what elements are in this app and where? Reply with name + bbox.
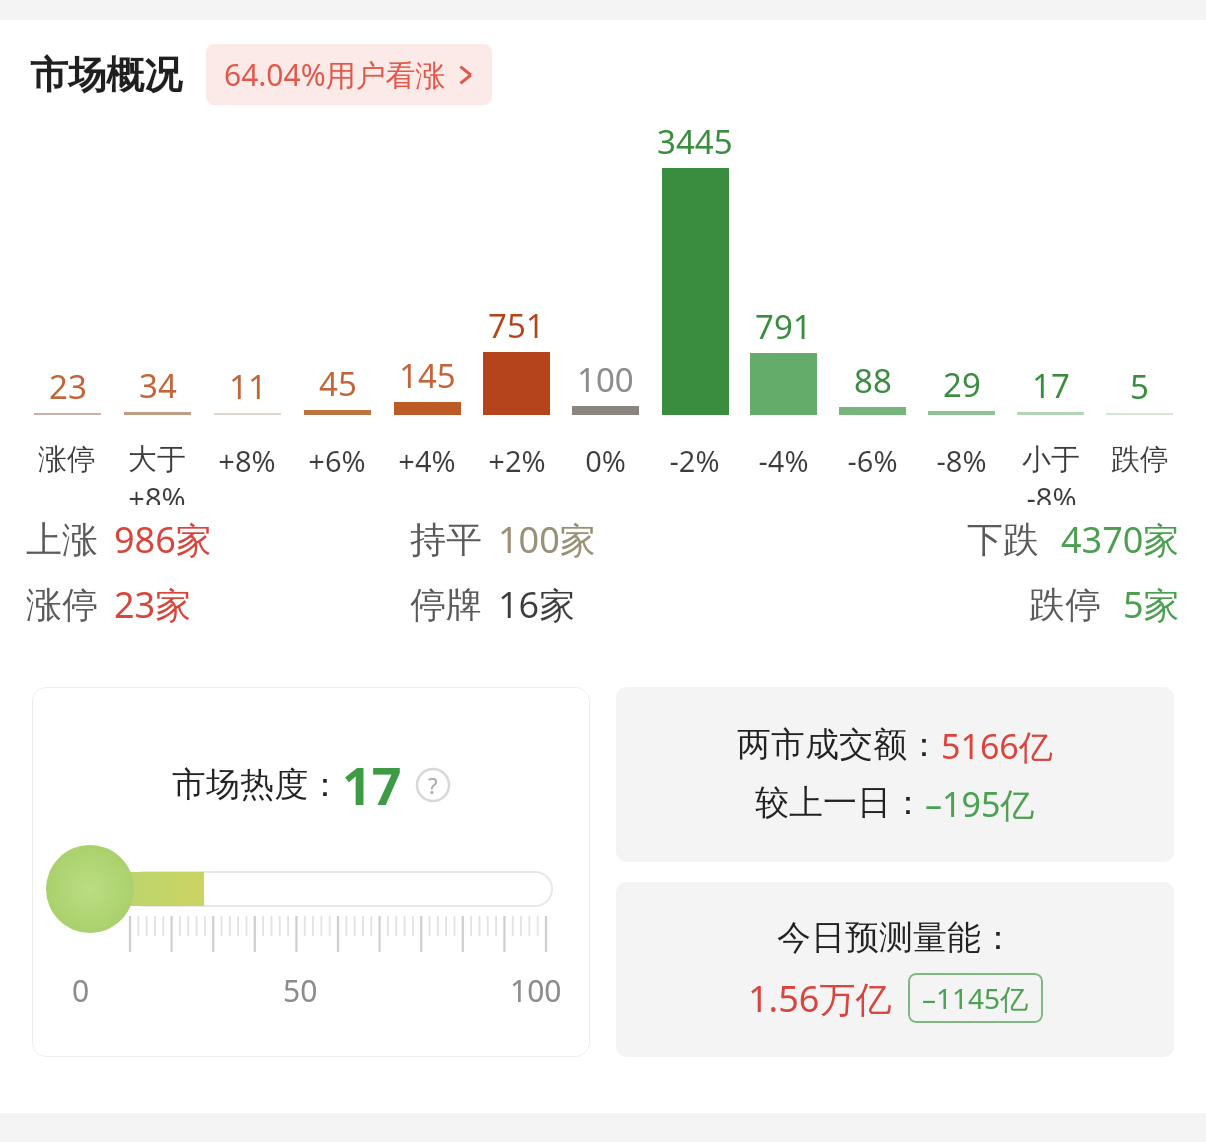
staticText: +6% (308, 441, 366, 480)
staticText: 今日预测量能： (777, 916, 1015, 959)
staticText: 涨停 (38, 441, 96, 478)
staticText: 34 (139, 363, 177, 408)
staticText: 17 (342, 749, 402, 820)
staticText: +8% (218, 441, 276, 480)
staticText: 100 (510, 970, 562, 1011)
staticText: 下跌 (967, 517, 1039, 562)
staticText: 4370家 (1061, 515, 1180, 564)
staticText: 29 (943, 362, 981, 407)
staticText: -2% (669, 441, 720, 480)
staticText: 145 (399, 353, 456, 398)
staticText: 50 (283, 970, 318, 1011)
staticText: 0 (72, 970, 90, 1011)
staticText: 23 (49, 364, 87, 409)
button[interactable]: 两市成交额： (616, 687, 1174, 862)
staticText: –195亿 (925, 781, 1035, 827)
staticText: 持平 (410, 517, 482, 562)
staticText: 较上一日： (755, 781, 925, 824)
staticText: 3445 (657, 119, 733, 164)
staticText: 100 (577, 357, 634, 402)
staticText: 两市成交额： (737, 723, 941, 766)
staticText: 小于 (1022, 441, 1080, 478)
staticText: 市场热度： (172, 763, 342, 806)
staticText: 45 (319, 361, 357, 406)
staticText: +2% (488, 441, 546, 480)
staticText: –1145亿 (922, 979, 1029, 1017)
staticText: -8% (1026, 478, 1077, 505)
button[interactable]: 市场热度： (32, 687, 590, 1057)
staticText: 100家 (498, 515, 596, 564)
staticText: 5166亿 (941, 723, 1053, 769)
staticText: 88 (854, 358, 892, 403)
staticText: 涨停 (26, 582, 98, 627)
staticText: +4% (398, 441, 456, 480)
staticText: 23家 (114, 580, 192, 629)
staticText: -8% (936, 441, 987, 480)
staticText: 17 (1032, 363, 1070, 408)
staticText: 986家 (114, 515, 212, 564)
staticText: 5 (1130, 364, 1149, 409)
button[interactable]: 帮助 (416, 768, 450, 802)
staticText: 751 (488, 303, 545, 348)
staticText: 1.56万亿 (748, 974, 892, 1023)
button[interactable]: 64.04%用户看涨 (206, 44, 492, 105)
staticText: ? (428, 770, 438, 800)
staticText: 11 (229, 364, 267, 409)
staticText: 791 (755, 304, 812, 349)
staticText: 跌停 (1111, 441, 1169, 478)
staticText: 64.04%用户看涨 (224, 54, 446, 95)
staticText: 停牌 (410, 582, 482, 627)
staticText: 市场概况 (30, 51, 182, 99)
staticText: 0% (585, 441, 626, 480)
staticText: -6% (847, 441, 898, 480)
button[interactable]: 今日预测量能： (616, 882, 1174, 1057)
staticText: 5家 (1123, 580, 1180, 629)
staticText: 大于 (128, 441, 186, 478)
staticText: 16家 (498, 580, 576, 629)
staticText: -4% (758, 441, 809, 480)
staticText: 上涨 (26, 517, 98, 562)
staticText: 跌停 (1029, 582, 1101, 627)
staticText: +8% (128, 478, 186, 505)
